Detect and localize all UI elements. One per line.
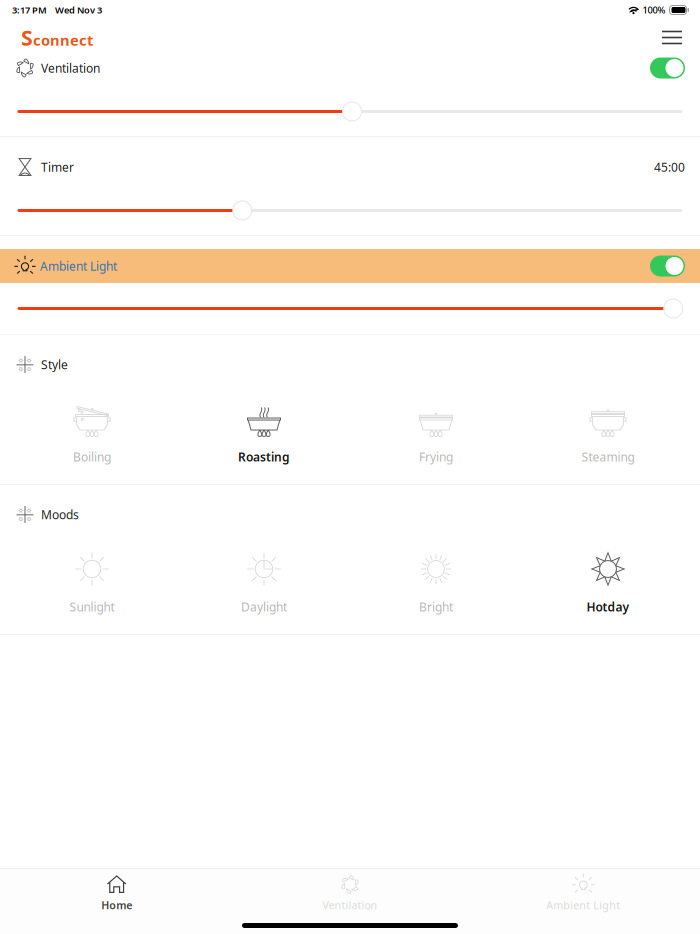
staticText: Frying: [419, 449, 453, 465]
staticText: Moods: [41, 506, 79, 522]
staticText: Daylight: [241, 599, 287, 615]
staticText: Bright: [419, 599, 453, 615]
staticText: S: [21, 23, 33, 52]
button[interactable]: Ambient light on: [650, 255, 685, 276]
staticText: Steaming: [581, 449, 634, 465]
button[interactable]: Hotday: [522, 551, 694, 634]
staticText: 45:00: [654, 159, 685, 175]
staticText: Wed Nov 3: [55, 4, 102, 16]
staticText: Ambient Light: [546, 898, 620, 912]
staticText: Ambient Light: [40, 258, 117, 274]
staticText: Boiling: [73, 449, 111, 465]
staticText: Home: [101, 898, 132, 912]
staticText: Hotday: [586, 599, 629, 615]
button[interactable]: Bright: [350, 551, 522, 634]
staticText: Ventilation: [41, 60, 100, 76]
staticText: Sunlight: [69, 599, 114, 615]
button[interactable]: Ambient Light: [467, 871, 700, 915]
button[interactable]: Ventilation on: [650, 57, 685, 78]
staticText: Style: [41, 356, 68, 372]
staticText: Timer: [41, 159, 74, 175]
staticText: 3:17 PM: [12, 4, 47, 16]
button[interactable]: Daylight: [178, 551, 350, 634]
staticText: Roasting: [238, 449, 290, 465]
button[interactable]: Sunlight: [6, 551, 178, 634]
staticText: Ventilation: [322, 898, 377, 912]
button[interactable]: Frying: [350, 401, 522, 484]
button[interactable]: Steaming: [522, 401, 694, 484]
button[interactable]: Ventilation: [233, 871, 467, 915]
staticText: connect: [33, 30, 93, 50]
button[interactable]: Home: [0, 871, 233, 915]
staticText: 100%: [642, 4, 665, 16]
button[interactable]: Menu: [656, 24, 688, 50]
button[interactable]: Boiling: [6, 401, 178, 484]
button[interactable]: Roasting: [178, 401, 350, 484]
